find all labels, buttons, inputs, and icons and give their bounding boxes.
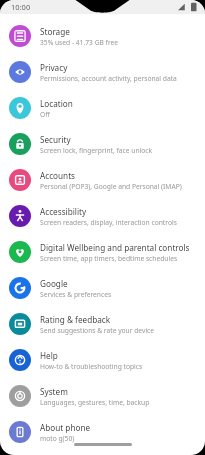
- other: Help: [9, 349, 31, 371]
- button[interactable]: System: [0, 378, 205, 414]
- button[interactable]: Storage: [0, 18, 205, 54]
- staticText: Accounts: [40, 170, 76, 181]
- staticText: Rating & feedback: [40, 314, 111, 325]
- staticText: Google: [40, 278, 68, 289]
- staticText: Privacy: [40, 62, 68, 73]
- other: Google: [9, 277, 31, 299]
- other: Security: [9, 133, 31, 155]
- staticText: Screen time, app timers, bedtime schedul…: [40, 254, 178, 263]
- button[interactable]: Privacy: [0, 54, 205, 90]
- button[interactable]: Accessibility: [0, 198, 205, 234]
- button[interactable]: Accounts: [0, 162, 205, 198]
- button[interactable]: Location: [0, 90, 205, 126]
- staticText: Send suggestions & rate your device: [40, 326, 155, 335]
- other: Location: [9, 97, 31, 119]
- button[interactable]: Google: [0, 270, 205, 306]
- other: Storage: [9, 25, 31, 47]
- staticText: How-to & troubleshooting topics: [40, 362, 143, 371]
- staticText: Accessibility: [40, 206, 87, 217]
- button[interactable]: About phone: [0, 414, 205, 450]
- other: System: [9, 385, 31, 407]
- other: Digital Wellbeing and parental controls: [9, 241, 31, 263]
- staticText: Permissions, account activity, personal …: [40, 74, 177, 83]
- staticText: About phone: [40, 422, 91, 433]
- staticText: Services & preferences: [40, 290, 112, 299]
- staticText: Screen lock, fingerprint, face unlock: [40, 146, 153, 155]
- staticText: moto g(50): [40, 434, 75, 443]
- staticText: Screen readers, display, interaction con…: [40, 218, 177, 227]
- staticText: Security: [40, 134, 71, 145]
- staticText: Storage: [40, 26, 70, 37]
- staticText: Digital Wellbeing and parental controls: [40, 242, 190, 253]
- staticText: 35% used - 41.73 GB free: [40, 38, 119, 47]
- staticText: Personal (POP3), Google and Personal (IM…: [40, 182, 182, 191]
- other: Rating & feedback: [9, 313, 31, 335]
- staticText: Languages, gestures, time, backup: [40, 398, 150, 407]
- button[interactable]: Help: [0, 342, 205, 378]
- button[interactable]: Security: [0, 126, 205, 162]
- other: Privacy: [9, 61, 31, 83]
- staticText: Help: [40, 350, 58, 361]
- staticText: Off: [40, 110, 50, 119]
- button[interactable]: Rating & feedback: [0, 306, 205, 342]
- staticText: 10:00: [11, 2, 31, 12]
- staticText: Location: [40, 98, 73, 109]
- staticText: System: [40, 386, 68, 397]
- other: Accounts: [9, 169, 31, 191]
- button[interactable]: Digital Wellbeing and parental controls: [0, 234, 205, 270]
- other: About phone: [9, 421, 31, 443]
- other: Accessibility: [9, 205, 31, 227]
